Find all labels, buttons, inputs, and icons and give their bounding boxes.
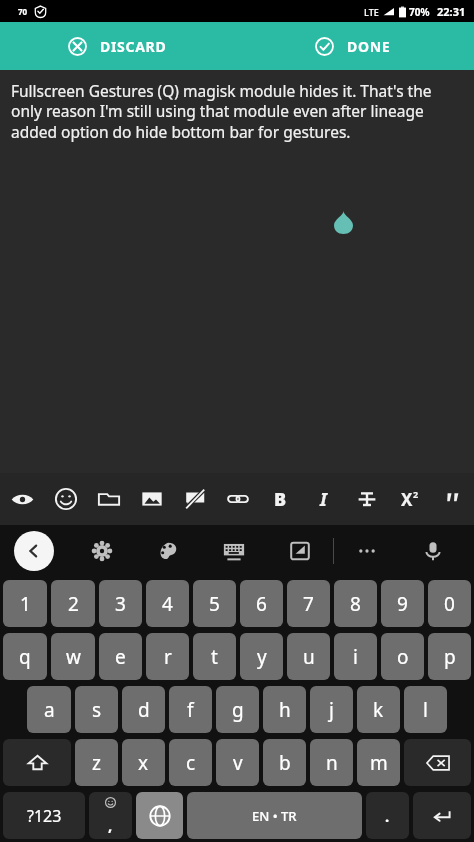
staticText: DONE	[347, 37, 391, 56]
staticText: DISCARD	[100, 37, 167, 56]
button[interactable]: d	[122, 686, 165, 733]
button[interactable]: s	[75, 686, 118, 733]
button[interactable]: Voice input	[400, 525, 466, 577]
button[interactable]: p	[428, 633, 471, 680]
button[interactable]: Theme	[135, 525, 201, 577]
button[interactable]: Strikethrough	[345, 473, 388, 525]
button[interactable]: DONE	[237, 22, 474, 70]
button[interactable]: w	[51, 633, 95, 680]
button[interactable]: m	[357, 739, 400, 786]
button[interactable]: c	[169, 739, 212, 786]
button[interactable]: z	[75, 739, 118, 786]
staticText: x	[138, 750, 149, 776]
staticText: n	[326, 750, 338, 776]
button[interactable]: Folder	[87, 473, 130, 525]
staticText: u	[303, 644, 315, 670]
staticText: h	[279, 697, 291, 723]
staticText: j	[329, 697, 334, 723]
button[interactable]: o	[381, 633, 424, 680]
staticText: Fullscreen Gestures (Q) magisk module hi…	[11, 80, 462, 143]
button[interactable]: EN • TR	[187, 792, 362, 839]
staticText: 4	[162, 591, 173, 617]
button[interactable]: l	[404, 686, 447, 733]
button[interactable]: 3	[99, 580, 142, 627]
button[interactable]: 7	[287, 580, 330, 627]
button[interactable]: Emoji	[44, 473, 87, 525]
staticText: s	[92, 697, 102, 723]
staticText: q	[19, 644, 31, 670]
button[interactable]: Change language	[136, 792, 183, 839]
staticText: 70	[18, 6, 28, 17]
staticText: l	[423, 697, 428, 723]
button[interactable]: Keyboard layout	[201, 525, 267, 577]
button[interactable]: 2	[51, 580, 95, 627]
button[interactable]: 1	[3, 580, 47, 627]
staticText: m	[370, 750, 388, 776]
staticText: EN • TR	[252, 807, 297, 825]
button[interactable]: Bold	[259, 473, 302, 525]
staticText: ,	[108, 815, 113, 835]
button[interactable]: 9	[381, 580, 424, 627]
staticText: i	[353, 644, 358, 670]
button[interactable]: Preview	[0, 473, 44, 525]
button[interactable]: 5	[193, 580, 236, 627]
button[interactable]: DISCARD	[0, 22, 237, 70]
button[interactable]: 6	[240, 580, 283, 627]
staticText: z	[92, 750, 101, 776]
staticText: 6	[256, 591, 267, 617]
button[interactable]: Italic	[302, 473, 345, 525]
staticText: a	[44, 697, 55, 723]
button[interactable]: 8	[334, 580, 377, 627]
button[interactable]: Enter	[413, 792, 471, 839]
button[interactable]: r	[146, 633, 189, 680]
button[interactable]: v	[216, 739, 259, 786]
button[interactable]: k	[357, 686, 400, 733]
button[interactable]: Comment	[173, 473, 216, 525]
button[interactable]: i	[334, 633, 377, 680]
button[interactable]: g	[216, 686, 259, 733]
button[interactable]: Link	[216, 473, 259, 525]
staticText: c	[186, 750, 196, 776]
staticText: 70%	[409, 5, 430, 19]
button[interactable]: Shift	[3, 739, 71, 786]
button[interactable]: One handed mode	[267, 525, 333, 577]
button[interactable]: .	[366, 792, 409, 839]
staticText: .	[385, 806, 390, 826]
staticText: 2	[68, 591, 79, 617]
staticText: w	[66, 644, 81, 670]
button[interactable]: u	[287, 633, 330, 680]
button[interactable]: Fullscreen Gestures (Q) magisk module hi…	[0, 70, 474, 473]
staticText: 5	[209, 591, 220, 617]
button[interactable]: t	[193, 633, 236, 680]
button[interactable]: f	[169, 686, 212, 733]
button[interactable]: Superscript	[388, 473, 431, 525]
button[interactable]: More options	[334, 525, 400, 577]
button[interactable]: Settings	[68, 525, 135, 577]
staticText: LTE	[364, 6, 379, 18]
button[interactable]: h	[263, 686, 306, 733]
button[interactable]: y	[240, 633, 283, 680]
button[interactable]: b	[263, 739, 306, 786]
button[interactable]: a	[27, 686, 71, 733]
button[interactable]: Back	[14, 531, 54, 571]
staticText: X	[401, 488, 413, 511]
staticText: B	[274, 487, 287, 512]
staticText: p	[444, 644, 456, 670]
staticText: d	[138, 697, 150, 723]
staticText: 7	[303, 591, 314, 617]
staticText: t	[211, 644, 218, 670]
button[interactable]: n	[310, 739, 353, 786]
button[interactable]: 4	[146, 580, 189, 627]
button[interactable]: Quote	[431, 473, 474, 525]
button[interactable]: Image	[130, 473, 173, 525]
button[interactable]: e	[99, 633, 142, 680]
button[interactable]: j	[310, 686, 353, 733]
button[interactable]: 0	[428, 580, 471, 627]
button[interactable]: ?123	[3, 792, 85, 839]
button[interactable]: x	[122, 739, 165, 786]
button[interactable]: q	[3, 633, 47, 680]
button[interactable]: Backspace	[404, 739, 471, 786]
button[interactable]: Comma	[89, 792, 132, 839]
staticText: g	[232, 697, 244, 723]
staticText: 2	[413, 488, 419, 500]
